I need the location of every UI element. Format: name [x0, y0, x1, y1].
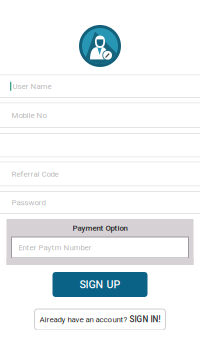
- staticText: Payment Option: [72, 223, 127, 233]
- button[interactable]: Mobile No: [0, 103, 200, 127]
- staticText: SIGN UP: [79, 278, 120, 291]
- button[interactable]: Password: [0, 192, 200, 213]
- button[interactable]: Referral Code: [0, 162, 200, 185]
- button[interactable]: Already have an account? SIGN IN!: [34, 309, 165, 330]
- staticText: Referral Code: [11, 169, 58, 179]
- staticText: Mobile No: [11, 111, 46, 120]
- staticText: Enter Paytm Number: [18, 243, 91, 252]
- staticText: Password: [11, 198, 45, 207]
- staticText: User Name: [12, 82, 51, 91]
- button[interactable]: Enter Paytm Number: [11, 237, 188, 258]
- button[interactable]: User Name: [0, 75, 200, 97]
- button[interactable]: SIGN UP: [52, 272, 147, 297]
- staticText: Already have an account? SIGN IN!: [39, 315, 160, 324]
